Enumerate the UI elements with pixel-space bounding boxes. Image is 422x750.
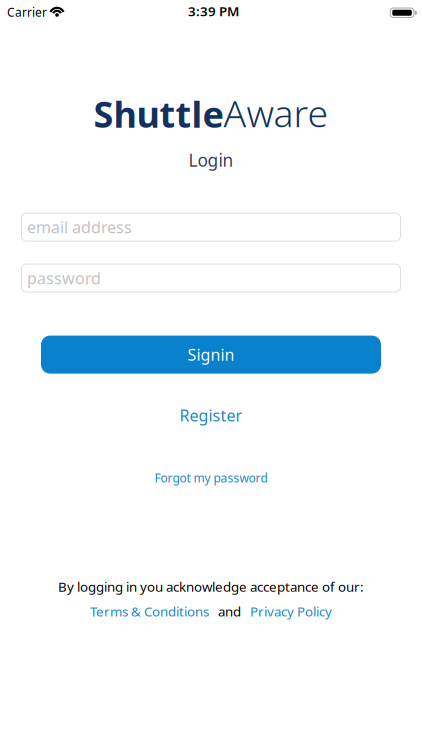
button[interactable]: Forgot my password xyxy=(154,470,267,486)
staticText: Login xyxy=(188,149,233,172)
staticText: password xyxy=(27,267,101,289)
staticText: Forgot my password xyxy=(154,470,267,486)
button[interactable]: Register xyxy=(179,405,242,426)
textField[interactable] xyxy=(0,264,422,293)
staticText: Aware xyxy=(223,88,328,138)
staticText: Shuttle xyxy=(93,90,223,138)
staticText: Register xyxy=(179,405,242,426)
button[interactable]: Signin xyxy=(41,336,381,374)
staticText: Signin xyxy=(187,344,234,365)
button[interactable]: Terms & Conditions xyxy=(90,602,209,620)
staticText: email address xyxy=(27,216,132,238)
staticText: 3:39 PM xyxy=(188,2,239,20)
textField[interactable] xyxy=(0,213,422,242)
staticText: and xyxy=(218,602,241,620)
button[interactable]: Privacy Policy xyxy=(250,602,332,620)
staticText: Carrier xyxy=(7,4,47,20)
staticText: By logging in you acknowledge acceptance… xyxy=(58,578,364,595)
staticText: Terms & Conditions xyxy=(90,602,209,620)
staticText: Privacy Policy xyxy=(250,602,332,620)
